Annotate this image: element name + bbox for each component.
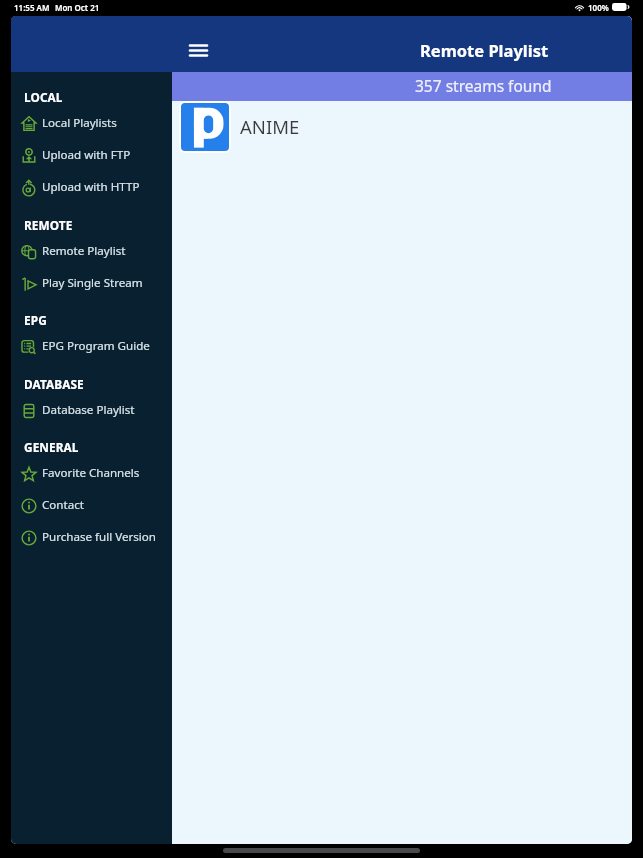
staticText: GENERAL [24, 439, 79, 455]
button[interactable]: Favorite Channels [11, 456, 172, 488]
staticText: Favorite Channels [42, 465, 140, 481]
staticText: Play Single Stream [42, 275, 143, 291]
staticText: Upload with HTTP [42, 179, 140, 195]
staticText: 11:55 AM [14, 2, 50, 13]
staticText: Remote Playlist [42, 243, 126, 259]
staticText: EPG Program Guide [42, 338, 150, 354]
staticText: Upload with FTP [42, 147, 131, 163]
button[interactable]: Upload with HTTP [11, 170, 172, 202]
staticText: EPG [24, 312, 47, 328]
button[interactable]: Local Playlists [11, 106, 172, 138]
staticText: LOCAL [24, 89, 63, 105]
button[interactable]: Play Single Stream [11, 266, 172, 298]
button[interactable]: Open navigation drawer [179, 31, 217, 69]
button[interactable]: ANIME [172, 101, 632, 155]
staticText: Mon Oct 21 [55, 2, 100, 13]
button[interactable]: Database Playlist [11, 393, 172, 425]
staticText: DATABASE [24, 376, 84, 392]
staticText: Database Playlist [42, 402, 135, 418]
staticText: ANIME [240, 114, 300, 139]
staticText: 100% [588, 2, 609, 13]
staticText: Local Playlists [42, 115, 117, 131]
staticText: Remote Playlist [420, 39, 549, 61]
button[interactable]: Contact [11, 488, 172, 520]
staticText: 357 streams found [415, 75, 552, 96]
staticText: REMOTE [24, 217, 73, 233]
button[interactable]: Remote Playlist [11, 234, 172, 266]
button[interactable]: Purchase full Version [11, 520, 172, 552]
button[interactable]: Upload with FTP [11, 138, 172, 170]
staticText: Contact [42, 497, 84, 513]
button[interactable]: EPG Program Guide [11, 329, 172, 361]
staticText: Purchase full Version [42, 529, 157, 545]
